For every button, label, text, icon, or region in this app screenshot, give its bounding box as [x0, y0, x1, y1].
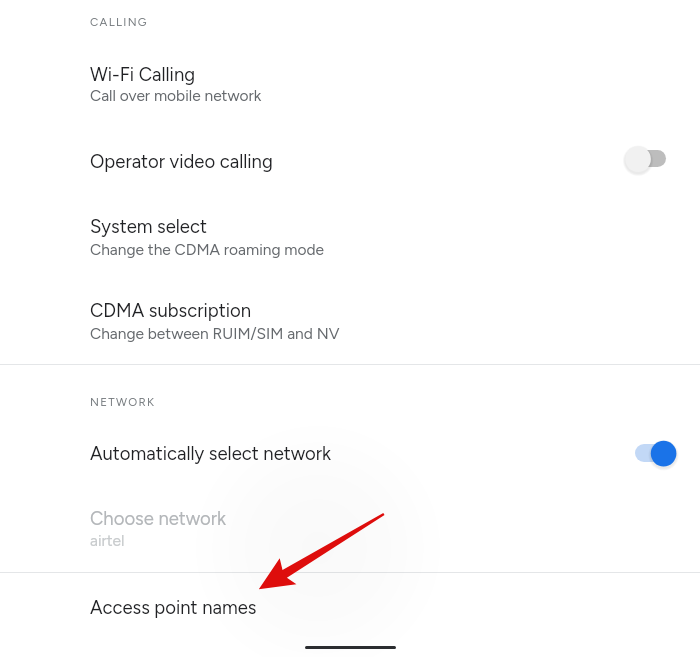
- button[interactable]: Operator video calling: [0, 134, 700, 184]
- button[interactable]: Wi-Fi Calling: [0, 52, 700, 104]
- staticText: Choose network: [90, 507, 227, 529]
- button[interactable]: Automatically select network, on: [629, 431, 691, 475]
- staticText: CALLING: [90, 15, 148, 29]
- staticText: Access point names: [90, 596, 257, 618]
- button[interactable]: CDMA subscription: [0, 289, 700, 341]
- staticText: Change the CDMA roaming mode: [90, 240, 325, 259]
- staticText: Call over mobile network: [90, 86, 262, 105]
- button[interactable]: Choose network: [0, 497, 700, 553]
- staticText: airtel: [90, 531, 125, 550]
- staticText: Automatically select network: [90, 442, 331, 464]
- staticText: NETWORK: [90, 395, 156, 409]
- button[interactable]: Automatically select network: [0, 430, 700, 478]
- button[interactable]: Operator video calling, off: [623, 137, 685, 181]
- staticText: System select: [90, 215, 207, 237]
- button[interactable]: System select: [0, 205, 700, 257]
- staticText: Change between RUIM/SIM and NV: [90, 324, 340, 343]
- staticText: Operator video calling: [90, 150, 273, 172]
- staticText: CDMA subscription: [90, 299, 252, 321]
- button[interactable]: Access point names: [0, 585, 700, 629]
- staticText: Wi-Fi Calling: [90, 63, 196, 85]
